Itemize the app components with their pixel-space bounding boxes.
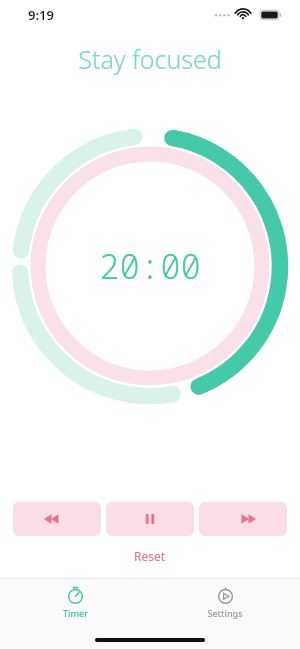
staticText: 9:19 [28,6,54,24]
staticText: Stay focused [78,42,222,76]
button[interactable]: Settings [150,579,300,627]
staticText: Settings [207,607,243,619]
button[interactable]: Rewind [13,502,101,536]
button[interactable]: Fast forward [199,502,287,536]
staticText: Timer [63,607,88,619]
staticText: Reset [134,548,166,564]
button[interactable]: Reset [124,546,176,566]
button[interactable]: Timer [0,579,150,627]
button[interactable]: Pause [106,502,194,536]
staticText: 20:00 [99,243,201,289]
